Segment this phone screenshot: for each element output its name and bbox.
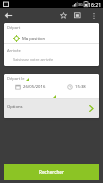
staticText: Arrivée xyxy=(7,48,21,53)
staticText: 15:38 xyxy=(75,84,86,90)
button[interactable]: Options xyxy=(4,99,99,118)
button[interactable]: Départ xyxy=(4,23,99,43)
staticText: Départ le xyxy=(7,76,25,81)
staticText: Options xyxy=(7,104,23,110)
button[interactable]: Arrivée xyxy=(4,44,99,66)
staticText: 16:21 xyxy=(88,1,102,8)
staticText: Saisissez votre arrivée xyxy=(13,57,54,62)
button[interactable]: Rechercher xyxy=(4,164,99,180)
staticText: Rechercher xyxy=(39,169,64,175)
button[interactable]: Save xyxy=(71,8,83,23)
button[interactable]: More options xyxy=(88,8,100,23)
button[interactable]: Favorite xyxy=(57,8,69,23)
staticText: Départ xyxy=(7,25,21,30)
button[interactable]: Back xyxy=(1,8,16,23)
staticText: Ma position xyxy=(22,36,46,42)
staticText: 26/05/2016 xyxy=(23,84,46,90)
staticText: 3G xyxy=(78,2,83,7)
